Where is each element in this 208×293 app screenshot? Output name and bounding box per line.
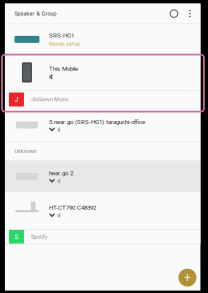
- staticText: Unknown: [14, 148, 36, 154]
- button[interactable]: Add device: [174, 265, 200, 291]
- staticText: +: [184, 271, 191, 285]
- button[interactable]: This Mobile: [5, 54, 200, 90]
- button[interactable]: Refresh: [165, 4, 182, 24]
- staticText: S: [14, 233, 18, 241]
- staticText: Speaker & Group: [14, 10, 56, 17]
- staticText: J: [14, 95, 18, 103]
- button[interactable]: hear.go 2: [5, 160, 200, 192]
- button[interactable]: 5.near.go (SRS-HG1) taraguchi-office: [5, 108, 200, 141]
- staticText: Spotify: [31, 234, 48, 240]
- button[interactable]: S: [5, 230, 200, 244]
- staticText: Needs setup: [49, 41, 80, 47]
- button[interactable]: SRS-HG1: [5, 24, 200, 54]
- staticText: hear.go 2: [49, 169, 73, 177]
- staticText: SRS-HG1: [49, 32, 74, 39]
- staticText: JioSaavn Music: [31, 96, 69, 102]
- staticText: 5.near.go (SRS-HG1) taraguchi-office: [49, 118, 145, 125]
- staticText: This Mobile: [49, 65, 78, 72]
- button[interactable]: More options: [182, 4, 197, 24]
- button[interactable]: HT-CT790 C48392: [5, 192, 200, 229]
- button[interactable]: J: [5, 91, 200, 108]
- staticText: HT-CT790 C48392: [49, 204, 96, 211]
